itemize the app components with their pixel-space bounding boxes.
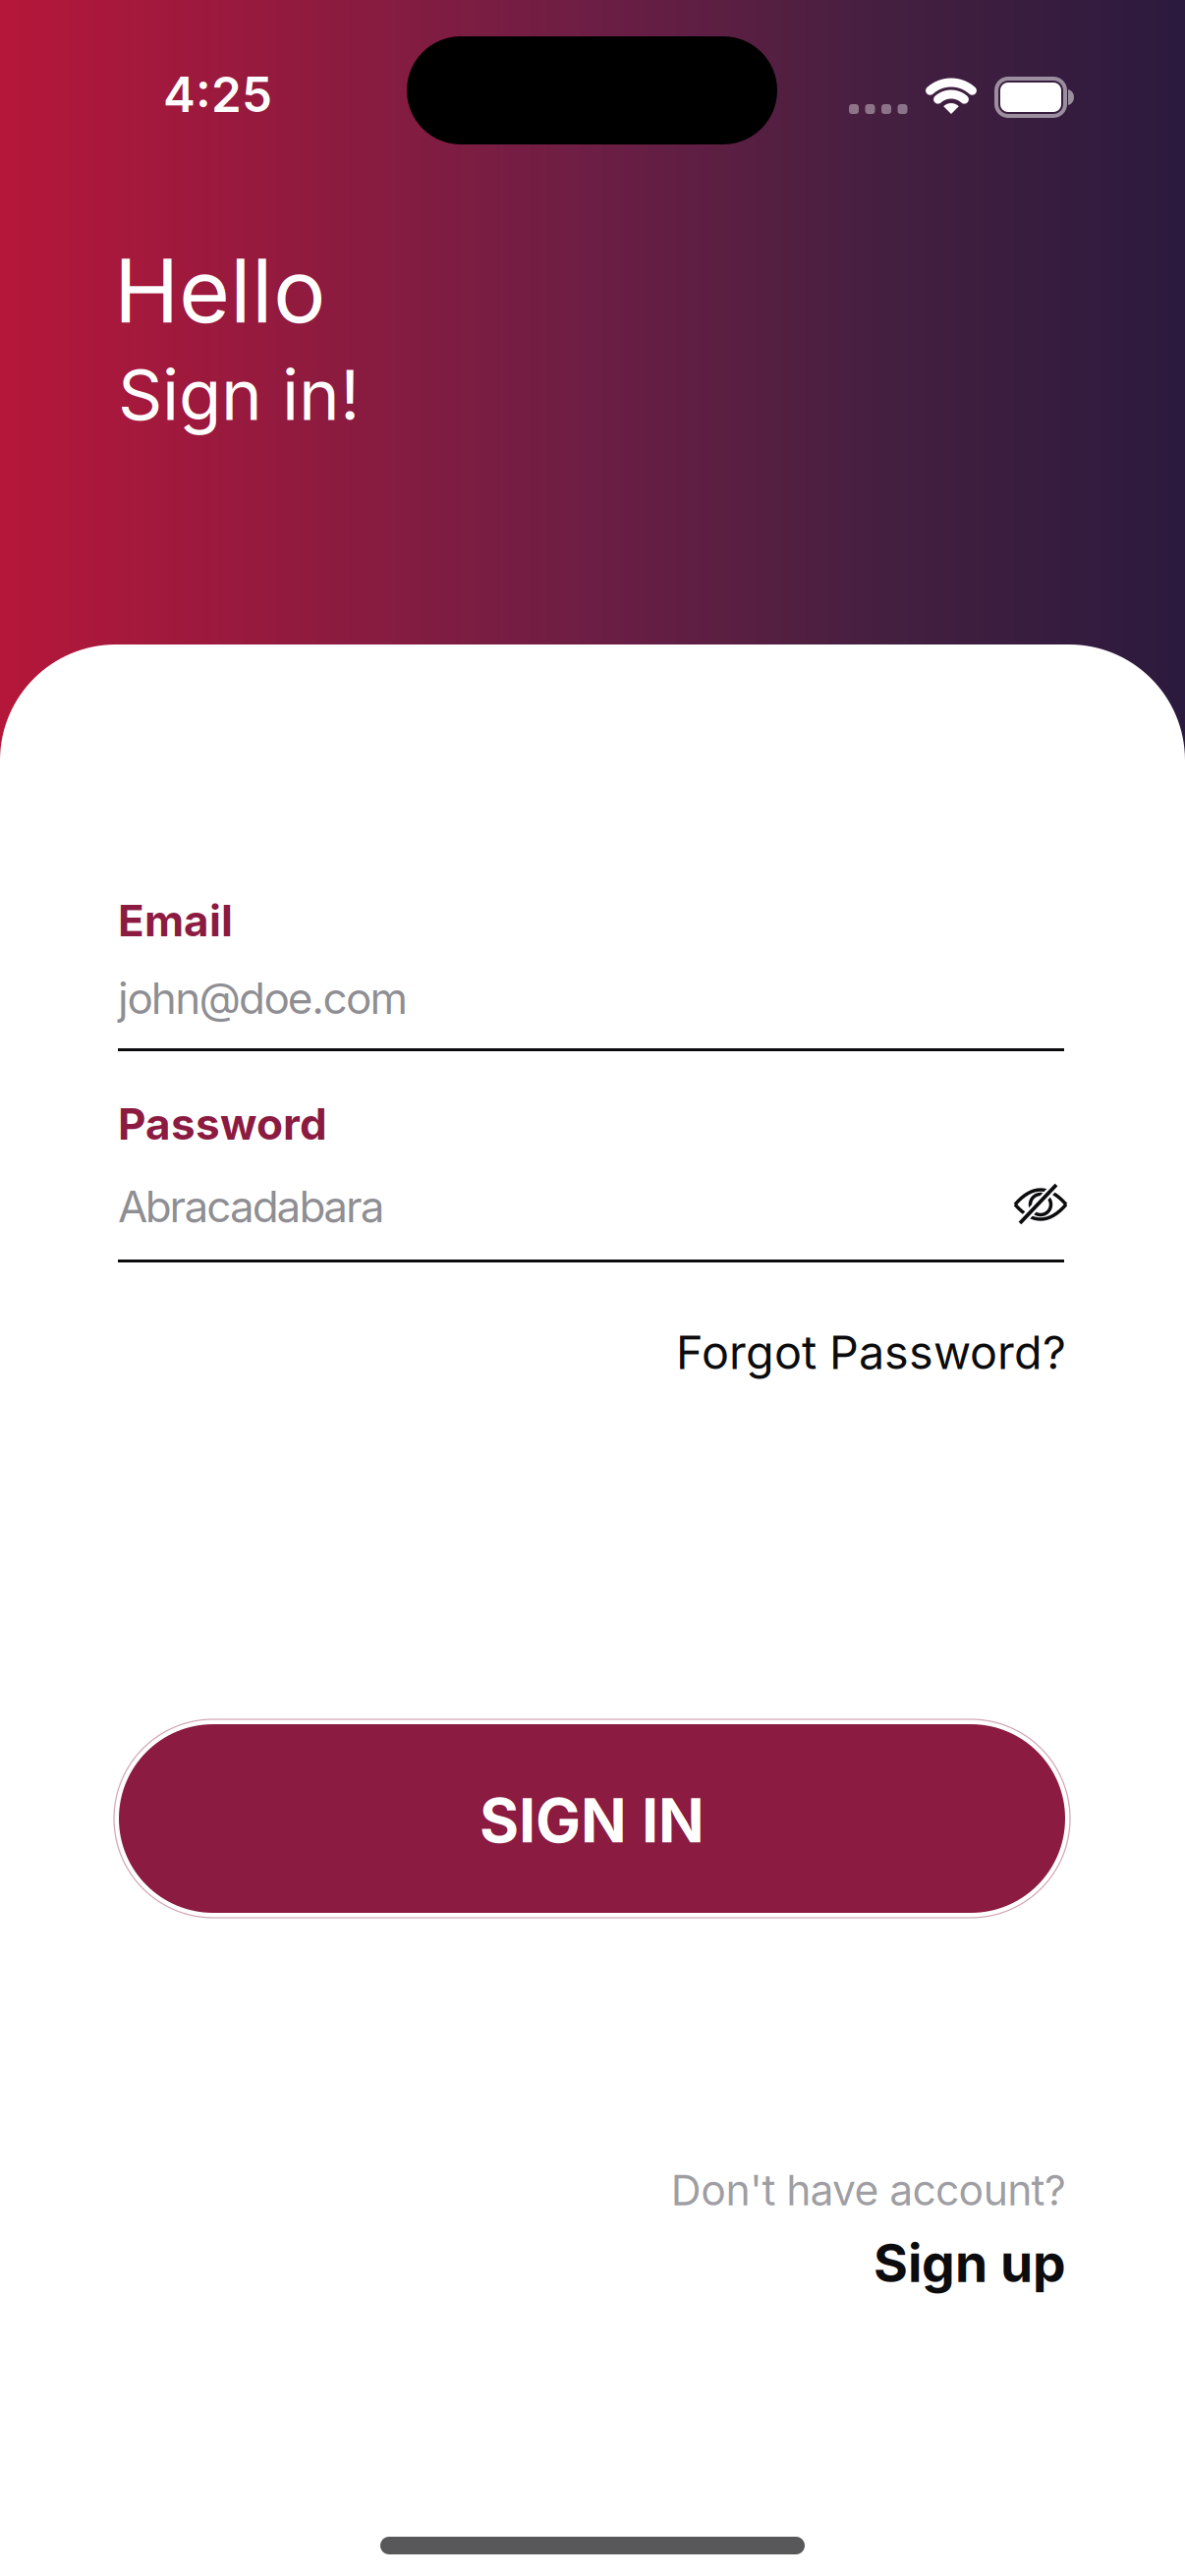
- button[interactable]: Show password: [1013, 1183, 1068, 1226]
- staticText: SIGN IN: [480, 1785, 705, 1856]
- staticText: Email: [118, 895, 233, 946]
- staticText: Hello: [114, 239, 326, 342]
- staticText: john@doe.com: [118, 973, 408, 1024]
- staticText: Abracadabara: [118, 1181, 385, 1232]
- staticText: Sign up: [874, 2232, 1066, 2294]
- staticText: Don't have account?: [671, 2165, 1066, 2215]
- button[interactable]: Sign up: [874, 2232, 1066, 2294]
- button[interactable]: SIGN IN: [119, 1724, 1065, 1913]
- staticText: Sign in!: [118, 354, 360, 436]
- staticText: Forgot Password?: [676, 1325, 1066, 1379]
- staticText: 4:25: [163, 66, 272, 123]
- staticText: Password: [118, 1098, 327, 1149]
- button[interactable]: Forgot Password?: [676, 1325, 1066, 1379]
